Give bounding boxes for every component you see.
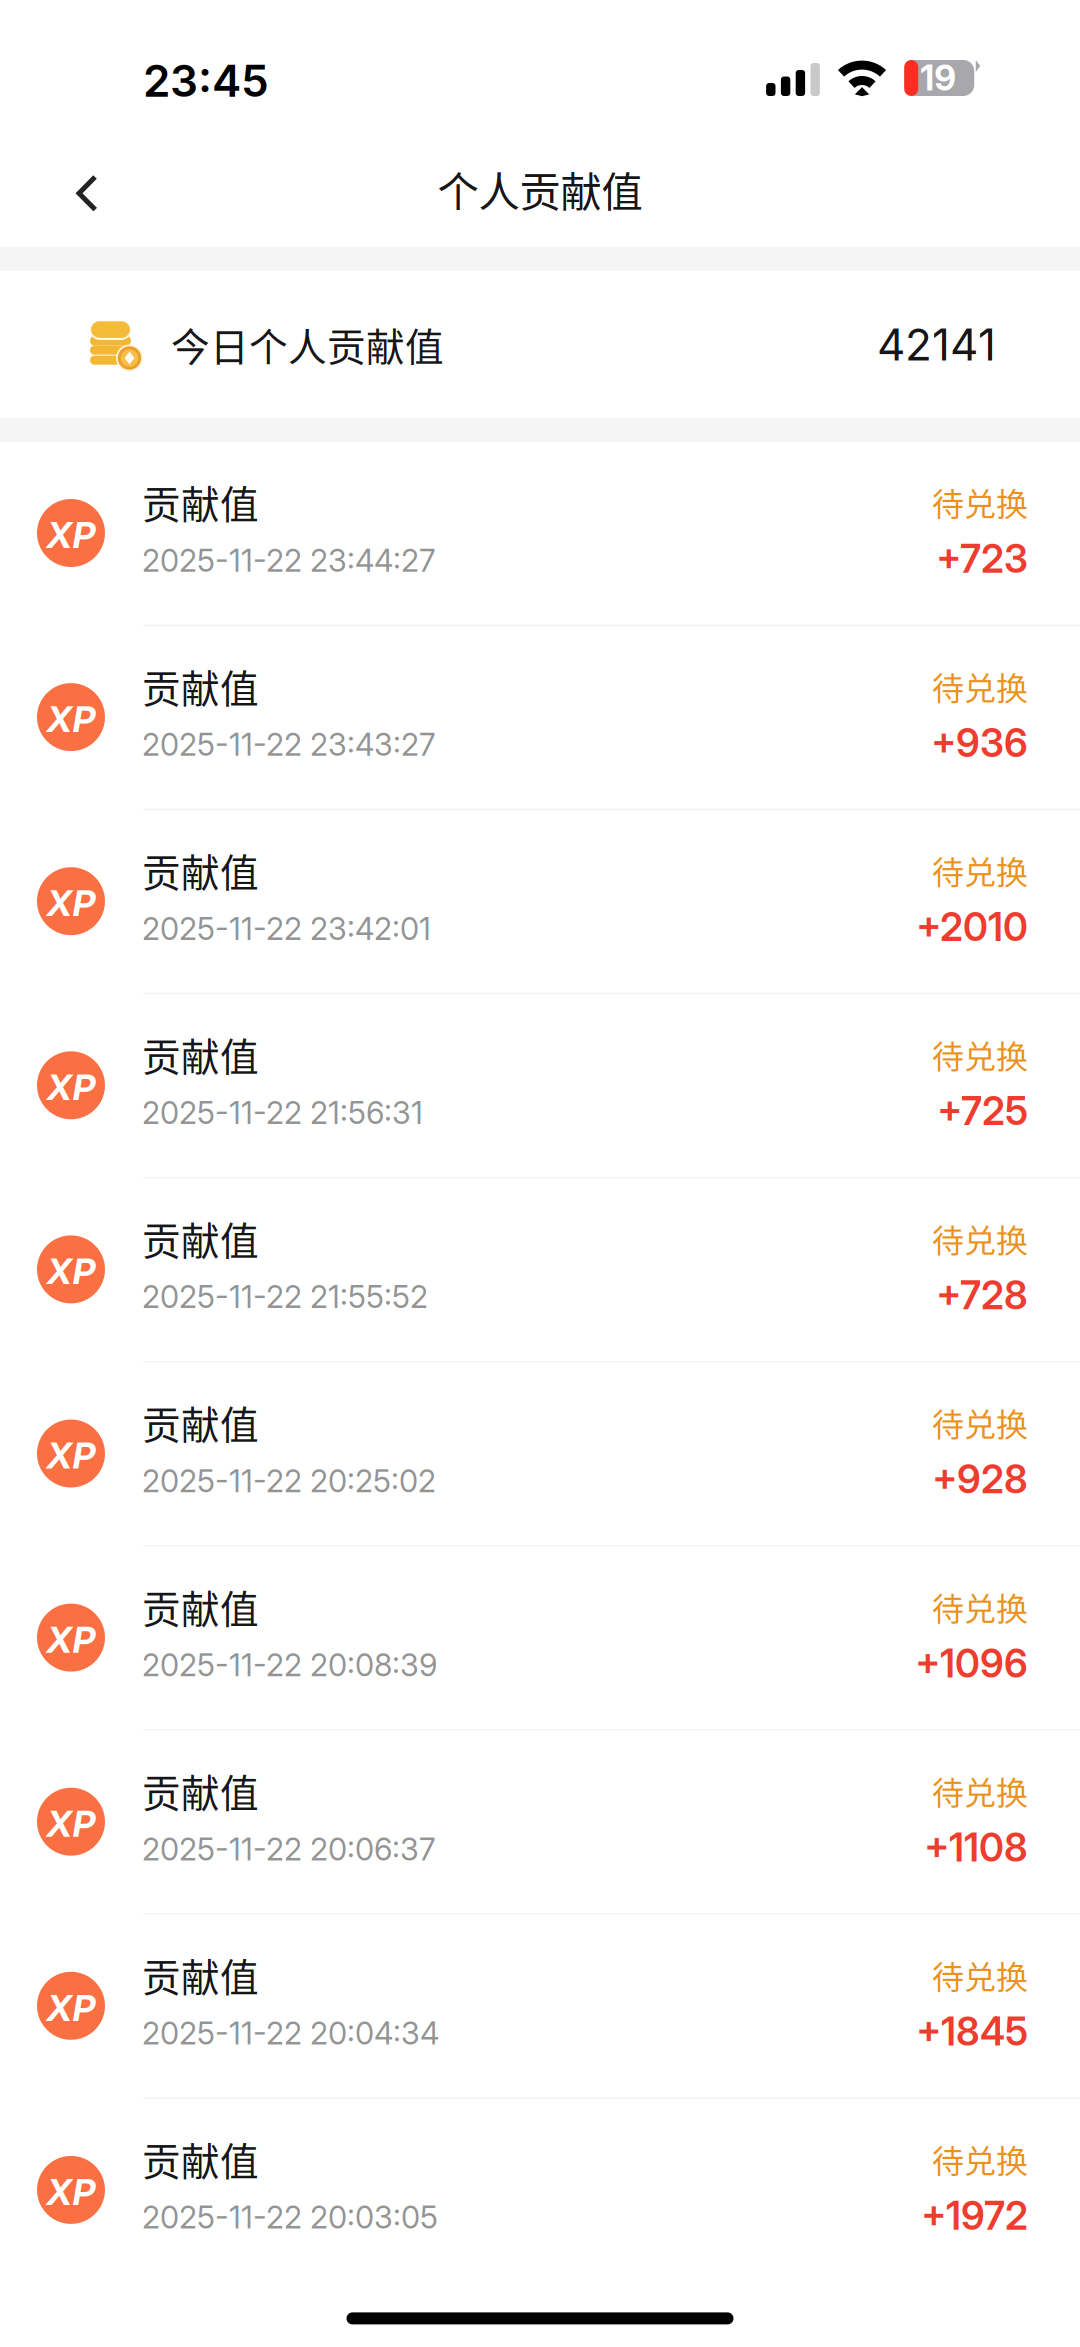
staticText: 待兑换 [932,1584,1028,1630]
button[interactable]: XP [0,2099,1080,2283]
staticText: +728 [936,1272,1028,1318]
staticText: XP [46,881,95,925]
staticText: +723 [936,535,1028,582]
staticText: 待兑换 [932,1952,1028,1998]
staticText: XP [46,513,95,557]
staticText: +936 [931,719,1028,766]
staticText: XP [46,1986,95,2030]
staticText: 待兑换 [932,847,1028,893]
staticText: 2025-11-22 23:44:27 [142,542,436,579]
button[interactable]: XP [0,1362,1080,1547]
staticText: 贡献值 [142,1579,259,1635]
staticText: +1096 [915,1640,1028,1687]
staticText: 个人贡献值 [437,159,642,219]
staticText: 19 [920,57,956,99]
staticText: 贡献值 [142,842,259,898]
staticText: 贡献值 [142,1947,259,2003]
staticText: XP [46,1434,95,1477]
staticText: 2025-11-22 21:55:52 [142,1278,428,1315]
staticText: +2010 [916,903,1028,950]
staticText: 贡献值 [142,1210,259,1266]
staticText: 贡献值 [142,1026,259,1082]
staticText: 待兑换 [932,1031,1028,1078]
staticText: 2025-11-22 20:08:39 [142,1647,437,1684]
staticText: 贡献值 [142,474,259,530]
staticText: +1845 [916,2008,1028,2055]
staticText: XP [46,2170,95,2214]
staticText: 待兑换 [932,1215,1028,1262]
button[interactable]: Back [0,131,108,247]
staticText: 待兑换 [932,1768,1028,1814]
staticText: 待兑换 [932,2136,1028,2182]
staticText: 今日个人贡献值 [171,316,444,372]
staticText: +725 [937,1088,1028,1134]
staticText: 2025-11-22 20:25:02 [142,1462,436,1500]
staticText: 贡献值 [142,2131,259,2187]
staticText: 贡献值 [142,1394,259,1450]
staticText: 2025-11-22 20:06:37 [142,1831,436,1868]
staticText: 2025-11-22 21:56:31 [142,1094,423,1131]
staticText: XP [46,1250,95,1293]
staticText: 42141 [877,318,996,371]
staticText: 2025-11-22 20:03:05 [142,2199,438,2236]
staticText: XP [46,697,95,741]
button[interactable]: XP [0,1731,1080,1915]
staticText: 23:45 [143,54,269,107]
button[interactable]: XP [0,1547,1080,1731]
button[interactable]: XP [0,442,1080,626]
staticText: 2025-11-22 20:04:34 [142,2015,439,2052]
button[interactable]: XP [0,1178,1080,1362]
staticText: XP [46,1065,95,1109]
staticText: 待兑换 [932,1399,1028,1446]
staticText: +928 [932,1456,1028,1503]
button[interactable]: XP [0,994,1080,1178]
staticText: 贡献值 [142,1763,259,1819]
staticText: +1108 [924,1824,1028,1871]
staticText: 贡献值 [142,658,259,714]
staticText: 2025-11-22 23:43:27 [142,726,436,763]
staticText: XP [46,1618,95,1661]
staticText: +1972 [921,2192,1028,2239]
button[interactable]: XP [0,626,1080,810]
staticText: 待兑换 [932,663,1028,709]
button[interactable]: XP [0,810,1080,994]
staticText: 2025-11-22 23:42:01 [142,910,431,947]
staticText: XP [46,1802,95,1845]
staticText: 待兑换 [932,479,1028,525]
button[interactable]: XP [0,1915,1080,2099]
